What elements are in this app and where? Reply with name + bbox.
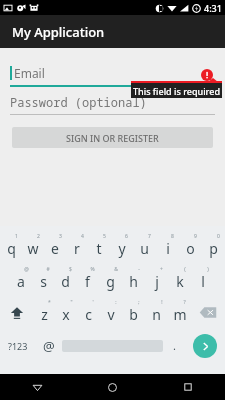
button[interactable]: $ — [54, 263, 76, 296]
staticText: - — [138, 266, 140, 273]
button[interactable]: 7 — [133, 230, 156, 263]
staticText: t — [96, 239, 102, 258]
staticText: g — [106, 272, 115, 291]
button[interactable]: Home — [75, 374, 150, 400]
staticText: o — [186, 239, 195, 258]
button[interactable]: " — [55, 296, 77, 329]
staticText: ) — [207, 266, 209, 273]
staticText: 4:31 — [204, 2, 222, 14]
staticText: d — [61, 272, 70, 291]
button[interactable]: * — [33, 296, 55, 329]
button[interactable]: Backspace — [191, 296, 225, 329]
staticText: v — [107, 305, 115, 324]
button[interactable]: 2 — [22, 230, 44, 263]
staticText: f — [85, 272, 90, 291]
staticText: 8 — [171, 233, 174, 240]
staticText: 0 — [217, 233, 220, 240]
staticText: ?123 — [8, 340, 28, 352]
staticText: 2 — [37, 233, 40, 240]
staticText: 6 — [125, 233, 128, 240]
button[interactable]: ; — [122, 296, 145, 329]
button[interactable]: Password (optional) — [10, 90, 215, 114]
other: Error — [201, 69, 213, 81]
staticText: k — [176, 272, 184, 291]
staticText: w — [27, 239, 39, 258]
button[interactable]: Recent apps — [150, 374, 225, 400]
staticText: q — [7, 239, 16, 258]
staticText: n — [152, 305, 161, 324]
staticText: 4 — [81, 233, 84, 240]
button[interactable]: 6 — [110, 230, 133, 263]
button[interactable]: 3 — [44, 230, 66, 263]
staticText: & — [114, 266, 118, 273]
button[interactable]: 9 — [179, 230, 202, 263]
staticText: j — [155, 272, 159, 291]
staticText: ( — [184, 266, 186, 273]
staticText: ! — [161, 299, 163, 306]
staticText: h — [129, 272, 138, 291]
button[interactable]: - — [122, 263, 145, 296]
button[interactable]: Email — [10, 60, 215, 86]
button[interactable]: 5 — [88, 230, 110, 263]
staticText: i — [166, 239, 170, 258]
staticText: ; — [138, 299, 140, 306]
staticText: * — [48, 299, 51, 306]
staticText: ? — [183, 299, 186, 306]
staticText: This field is required — [133, 85, 220, 97]
staticText: % — [90, 266, 95, 273]
staticText: $ — [69, 266, 72, 273]
staticText: . — [173, 338, 176, 353]
staticText: " — [70, 299, 73, 306]
button[interactable]: Enter — [193, 334, 217, 358]
button[interactable]: : — [99, 296, 122, 329]
staticText: x — [62, 305, 70, 324]
button[interactable]: # — [32, 263, 54, 296]
staticText: : — [115, 299, 117, 306]
staticText: u — [140, 239, 149, 258]
staticText: Email — [14, 65, 45, 81]
button[interactable]: 0 — [202, 230, 225, 263]
button[interactable]: ?123 — [0, 329, 36, 362]
staticText: c — [85, 305, 92, 324]
button[interactable]: & — [99, 263, 122, 296]
staticText: 3 — [59, 233, 62, 240]
staticText: y — [118, 239, 126, 258]
staticText: SIGN IN OR REGISTER — [66, 132, 159, 144]
staticText: 5 — [103, 233, 106, 240]
staticText: + — [160, 266, 163, 273]
button[interactable]: Space — [62, 329, 163, 362]
staticText: @ — [24, 266, 29, 273]
button[interactable]: % — [76, 263, 99, 296]
button[interactable]: @ — [10, 263, 32, 296]
staticText: z — [41, 305, 48, 324]
button[interactable]: 1 — [0, 230, 22, 263]
staticText: a — [17, 272, 25, 291]
staticText: m — [173, 305, 187, 324]
staticText: ' — [92, 299, 94, 306]
staticText: b — [129, 305, 138, 324]
staticText: 7 — [148, 233, 151, 240]
button[interactable]: Shift — [0, 296, 33, 329]
button[interactable]: SIGN IN OR REGISTER — [12, 127, 213, 148]
staticText: 9 — [194, 233, 197, 240]
button[interactable]: ! — [145, 296, 168, 329]
button[interactable]: ( — [168, 263, 191, 296]
button[interactable]: + — [145, 263, 168, 296]
button[interactable]: 4 — [66, 230, 88, 263]
button[interactable]: @ — [36, 329, 62, 362]
staticText: My Application — [12, 23, 105, 41]
button[interactable]: ' — [77, 296, 99, 329]
button[interactable]: ? — [168, 296, 191, 329]
staticText: r — [74, 239, 80, 258]
button[interactable]: 8 — [156, 230, 179, 263]
button[interactable]: Back — [0, 374, 75, 400]
staticText: s — [40, 272, 47, 291]
staticText: p — [209, 239, 218, 258]
staticText: l — [201, 272, 205, 291]
staticText: 1 — [15, 233, 18, 240]
staticText: Password (optional) — [10, 94, 147, 110]
button[interactable]: . — [163, 329, 185, 362]
button[interactable]: ) — [191, 263, 214, 296]
staticText: # — [46, 266, 50, 273]
staticText: e — [51, 239, 59, 258]
